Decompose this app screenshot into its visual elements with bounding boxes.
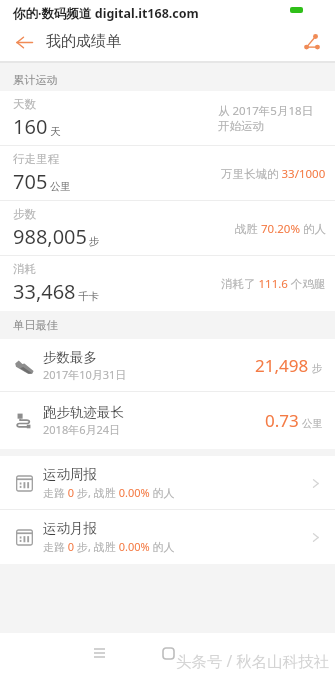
staticText: 公里 — [50, 180, 71, 193]
button[interactable]: 消耗 — [0, 256, 335, 311]
staticText: 万里长城的 33/1000 — [221, 166, 326, 182]
staticText: 160 — [13, 113, 48, 140]
staticText: 2017年10月31日 — [43, 367, 127, 382]
staticText: 2018年6月24日 — [43, 422, 121, 437]
staticText: 33,468 — [13, 278, 76, 305]
button[interactable]: 天数 — [0, 91, 335, 146]
staticText: 行走里程 — [13, 152, 59, 166]
staticText: 头条号 / 秋名山科技社 — [176, 650, 330, 671]
staticText: 公里 — [302, 417, 323, 430]
staticText: 21,498 — [255, 354, 309, 377]
button[interactable]: 运动周报 — [0, 456, 335, 510]
staticText: 步数最多 — [43, 349, 97, 366]
button[interactable]: 步数最多 — [0, 339, 335, 392]
staticText: 运动月报 — [43, 520, 97, 537]
staticText: 你的·数码频道 digital.it168.com — [13, 5, 199, 22]
button[interactable]: 步数 — [0, 201, 335, 256]
button[interactable]: Share — [297, 27, 327, 57]
staticText: 运动周报 — [43, 466, 97, 483]
staticText: 步 — [312, 362, 323, 375]
staticText: 我的成绩单 — [46, 32, 121, 51]
button[interactable]: 跑步轨迹最长 — [0, 392, 335, 449]
staticText: 988,005 — [13, 223, 87, 250]
staticText: 步数 — [13, 207, 36, 221]
staticText: 千卡 — [78, 290, 99, 303]
staticText: 从 2017年5月18日 开始运动 — [218, 103, 314, 134]
staticText: 天 — [50, 125, 61, 138]
button[interactable]: Recent apps — [81, 635, 117, 671]
button[interactable]: Back — [9, 27, 39, 57]
staticText: 消耗了 111.6 个鸡腿 — [221, 276, 326, 292]
staticText: 单日最佳 — [13, 318, 58, 332]
staticText: 战胜 70.20% 的人 — [235, 221, 326, 237]
staticText: 步 — [89, 235, 100, 248]
staticText: 消耗 — [13, 262, 36, 276]
button[interactable]: 行走里程 — [0, 146, 335, 201]
staticText: 0.73 — [265, 409, 299, 432]
staticText: 跑步轨迹最长 — [43, 404, 124, 421]
staticText: 走路 0 步, 战胜 0.00% 的人 — [43, 539, 175, 554]
staticText: 累计运动 — [13, 73, 58, 87]
staticText: 705 — [13, 168, 48, 195]
staticText: 天数 — [13, 97, 36, 111]
button[interactable]: 运动月报 — [0, 510, 335, 564]
button[interactable]: Home — [150, 635, 186, 671]
staticText: 走路 0 步, 战胜 0.00% 的人 — [43, 485, 175, 500]
